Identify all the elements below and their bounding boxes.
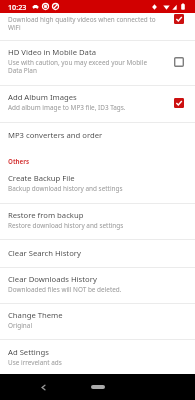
staticText: Download high quality videos when connec… <box>8 15 159 32</box>
staticText: HD Video in Mobile Data <box>8 47 97 57</box>
button[interactable]: HD Video in Mobile Data <box>0 41 195 85</box>
staticText: Use irrevelant ads <box>8 358 62 367</box>
staticText: Others <box>8 157 30 165</box>
button[interactable]: Home <box>85 380 111 394</box>
button[interactable]: HD Video downloads <box>0 13 195 40</box>
staticText: Ad Settings <box>8 347 49 357</box>
staticText: Restore download history and settings <box>8 221 124 230</box>
button[interactable]: Change Theme <box>0 304 195 339</box>
button[interactable]: Clear Downloads History <box>0 268 195 303</box>
staticText: Change Theme <box>8 310 63 320</box>
staticText: Clear Downloads History <box>8 274 97 284</box>
staticText: Add Album Images <box>8 92 77 102</box>
button[interactable]: Clear Search History <box>0 240 195 267</box>
staticText: 10:23 <box>8 2 27 12</box>
staticText: MP3 converters and order <box>8 130 103 140</box>
staticText: Create Backup File <box>8 173 75 183</box>
button[interactable]: Create Backup File <box>0 167 195 203</box>
staticText: Backup download history and settings <box>8 184 123 193</box>
button[interactable]: Ad Settings <box>0 340 195 374</box>
staticText: Original <box>8 321 33 330</box>
staticText: Use with caution, you may exceed your Mo… <box>8 58 159 75</box>
staticText: Clear Search History <box>8 248 81 258</box>
button[interactable]: Add Album Images <box>0 86 195 122</box>
staticText: Add album image to MP3 file, ID3 Tags. <box>8 103 126 112</box>
button[interactable]: Restore from backup <box>0 204 195 239</box>
staticText: Downloaded files will NOT be deleted. <box>8 285 122 294</box>
staticText: Restore from backup <box>8 210 84 220</box>
button[interactable]: MP3 converters and order <box>0 123 195 151</box>
button[interactable]: Back <box>36 380 50 394</box>
